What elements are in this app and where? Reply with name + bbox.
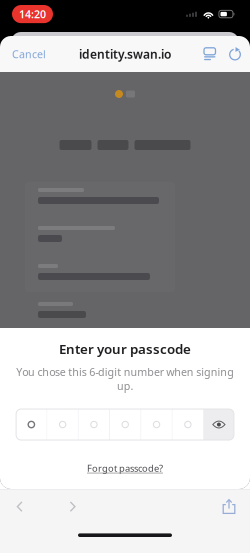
button[interactable]: Reload page	[222, 39, 248, 69]
button[interactable]: Share	[209, 493, 249, 521]
button[interactable]: Reader view	[197, 39, 222, 69]
staticText: identity.swan.io	[79, 46, 171, 62]
staticText: Enter your passcode	[59, 340, 191, 358]
staticText: Cancel	[12, 47, 46, 61]
staticText: 14:20	[19, 7, 46, 21]
staticText: You chose this 6-digit number when signi…	[16, 365, 234, 393]
button[interactable]: Back	[0, 493, 40, 521]
staticText: Forgot passcode?	[87, 462, 163, 474]
button[interactable]: Show passcode	[204, 409, 234, 440]
button[interactable]: Cancel	[2, 38, 56, 70]
button[interactable]: Forgot passcode?	[77, 456, 173, 480]
button[interactable]: Forward	[53, 493, 93, 521]
